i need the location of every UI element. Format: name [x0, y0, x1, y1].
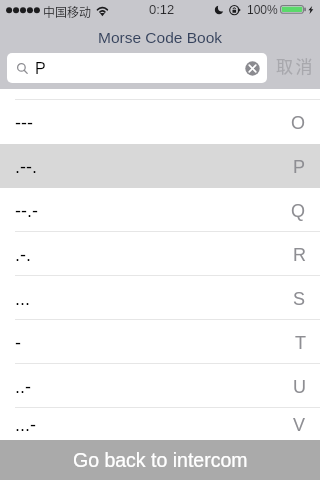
staticText: U	[293, 377, 306, 397]
staticText: 中国移动	[43, 3, 92, 20]
staticText: Morse Code Book	[98, 29, 223, 46]
button[interactable]: ---	[0, 100, 320, 143]
button[interactable]: .-.	[0, 232, 320, 275]
staticText: S	[293, 289, 306, 309]
staticText: .-.	[15, 245, 31, 265]
button[interactable]: Go back to intercom	[0, 440, 320, 480]
button[interactable]: Clear search	[241, 57, 263, 79]
button[interactable]: --.-	[0, 188, 320, 231]
button[interactable]: -	[0, 320, 320, 363]
staticText: ..-	[15, 377, 31, 397]
staticText: -	[15, 333, 21, 353]
staticText: 100%	[247, 3, 278, 16]
staticText: 0:12	[149, 2, 175, 17]
staticText: Q	[291, 201, 306, 221]
staticText: P	[293, 157, 306, 177]
button[interactable]: P	[7, 53, 267, 83]
staticText: ...	[15, 289, 31, 309]
button[interactable]: 取消	[276, 49, 315, 81]
staticText: P	[35, 60, 46, 78]
button[interactable]: ..-	[0, 364, 320, 407]
staticText: ...-	[15, 415, 36, 435]
button[interactable]: ...	[0, 276, 320, 319]
staticText: ---	[15, 113, 33, 133]
staticText: Go back to intercom	[73, 449, 248, 471]
staticText: --.-	[15, 201, 38, 221]
staticText: V	[293, 415, 306, 435]
staticText: 取消	[276, 53, 315, 78]
staticText: O	[291, 113, 306, 133]
button[interactable]: .--.	[0, 144, 320, 187]
staticText: .--.	[15, 157, 37, 177]
button[interactable]: ...-	[0, 408, 320, 440]
staticText: T	[295, 333, 306, 353]
staticText: R	[293, 245, 306, 265]
